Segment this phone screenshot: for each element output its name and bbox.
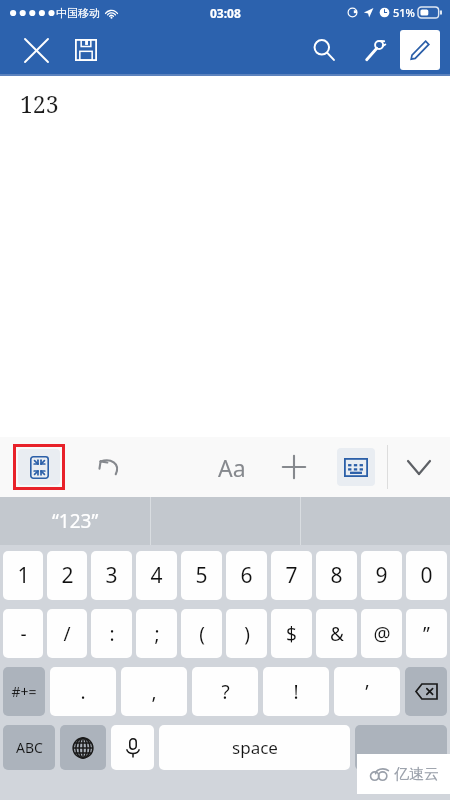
button[interactable]: 2 [47, 551, 87, 600]
button[interactable]: Hide keyboard [388, 437, 450, 497]
staticText: . [80, 679, 86, 705]
button[interactable]: Change language [60, 725, 106, 770]
staticText: #+= [11, 682, 37, 701]
button[interactable]: 0 [406, 551, 447, 600]
button[interactable]: “123” [0, 497, 150, 545]
button[interactable]: : [91, 609, 132, 658]
staticText: 123 [20, 88, 59, 119]
button[interactable]: Insert [263, 437, 325, 497]
button[interactable]: & [316, 609, 357, 658]
button[interactable]: / [47, 609, 87, 658]
button[interactable]: ABC [3, 725, 55, 770]
button[interactable]: 4 [136, 551, 177, 600]
staticText: Aa [218, 452, 246, 483]
button[interactable]: Fit to screen [18, 449, 60, 485]
button[interactable]: 3 [91, 551, 132, 600]
staticText: & [330, 621, 344, 647]
staticText: 4 [150, 561, 163, 590]
staticText: @ [373, 621, 391, 647]
staticText: , [151, 679, 157, 705]
staticText: : [109, 621, 115, 647]
button[interactable]: Save [64, 28, 108, 72]
button[interactable]: ’ [334, 667, 400, 716]
staticText: 7 [285, 561, 298, 590]
button[interactable]: ! [263, 667, 329, 716]
button[interactable]: Search [302, 28, 346, 72]
button[interactable]: 7 [271, 551, 312, 600]
staticText: 51% [393, 5, 415, 20]
staticText: ( [199, 621, 205, 647]
staticText: ) [244, 621, 250, 647]
staticText: 03:08 [210, 5, 241, 21]
staticText: 亿速云 [394, 765, 439, 784]
staticText: 中国移动 [56, 6, 100, 20]
staticText: 1 [17, 561, 30, 590]
button[interactable]: 6 [226, 551, 267, 600]
button[interactable]: Return [355, 725, 447, 770]
button[interactable]: Edit [400, 30, 440, 70]
button[interactable]: Keyboard [337, 448, 375, 486]
staticText: 0 [420, 561, 433, 590]
button[interactable]: ) [226, 609, 267, 658]
staticText: ! [293, 679, 299, 705]
button[interactable]: Undo [78, 437, 139, 497]
button[interactable]: Close [14, 28, 58, 72]
staticText: “123” [52, 508, 99, 534]
staticText: 8 [330, 561, 343, 590]
button[interactable]: #+= [3, 667, 45, 716]
staticText: ABC [16, 738, 43, 757]
button[interactable]: 9 [361, 551, 402, 600]
staticText: 9 [375, 561, 388, 590]
button[interactable]: 5 [181, 551, 222, 600]
staticText: 6 [240, 561, 253, 590]
button[interactable]: 8 [316, 551, 357, 600]
staticText: $ [286, 621, 297, 647]
staticText: 5 [195, 561, 208, 590]
staticText: 2 [61, 561, 74, 590]
button[interactable]: , [121, 667, 187, 716]
staticText: - [20, 621, 27, 647]
button[interactable]: ? [192, 667, 258, 716]
staticText: ? [221, 679, 230, 705]
button[interactable]: Aa [201, 437, 263, 497]
button[interactable]: ” [406, 609, 447, 658]
staticText: ; [154, 621, 160, 647]
button[interactable]: $ [271, 609, 312, 658]
button[interactable]: Tools [352, 28, 396, 72]
staticText: space [232, 736, 278, 759]
button[interactable]: ( [181, 609, 222, 658]
staticText: 3 [105, 561, 118, 590]
button[interactable]: space [159, 725, 350, 770]
button[interactable]: 1 [3, 551, 43, 600]
staticText: ’ [365, 679, 369, 705]
button[interactable]: Dictate [111, 725, 154, 770]
button[interactable]: ; [136, 609, 177, 658]
button[interactable]: - [3, 609, 43, 658]
button[interactable]: Backspace [405, 667, 447, 716]
staticText: ” [423, 621, 430, 647]
staticText: / [63, 621, 71, 647]
button[interactable]: @ [361, 609, 402, 658]
button[interactable]: . [50, 667, 116, 716]
